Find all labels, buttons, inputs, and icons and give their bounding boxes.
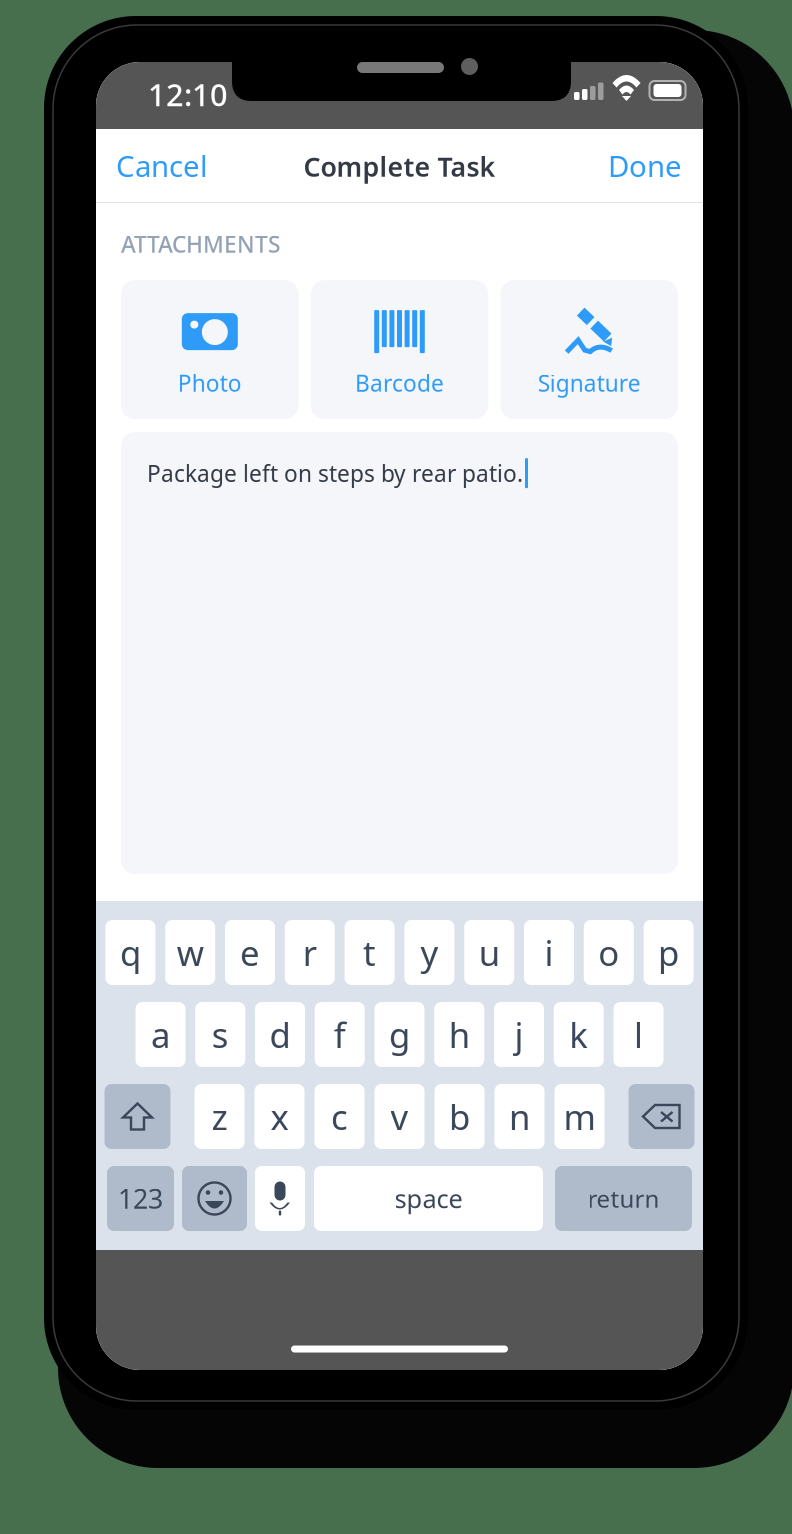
button[interactable]: i: [524, 920, 574, 985]
button[interactable]: v: [374, 1084, 424, 1149]
staticText: Complete Task: [303, 149, 495, 184]
staticText: Barcode: [355, 368, 444, 398]
staticText: l: [634, 1011, 643, 1057]
button[interactable]: p: [644, 920, 694, 985]
button[interactable]: q: [105, 920, 155, 985]
button[interactable]: Barcode: [311, 280, 488, 419]
staticText: 123: [118, 1181, 163, 1216]
button[interactable]: g: [374, 1002, 424, 1067]
button[interactable]: b: [434, 1084, 484, 1149]
staticText: Done: [608, 146, 682, 185]
button[interactable]: return: [555, 1166, 692, 1231]
button[interactable]: Emoji: [182, 1166, 247, 1231]
staticText: h: [449, 1011, 470, 1057]
staticText: j: [514, 1011, 523, 1057]
button[interactable]: t: [345, 920, 395, 985]
staticText: Signature: [538, 368, 641, 398]
button[interactable]: d: [255, 1002, 305, 1067]
button[interactable]: 123: [107, 1166, 174, 1231]
staticText: o: [598, 929, 619, 975]
staticText: t: [363, 929, 376, 975]
staticText: i: [544, 929, 553, 975]
button[interactable]: r: [285, 920, 335, 985]
staticText: a: [151, 1011, 170, 1057]
staticText: f: [334, 1011, 346, 1057]
staticText: q: [120, 929, 141, 975]
staticText: n: [509, 1093, 530, 1139]
staticText: Photo: [178, 368, 242, 398]
button[interactable]: z: [194, 1084, 244, 1149]
staticText: d: [269, 1011, 290, 1057]
button[interactable]: Delete: [628, 1084, 694, 1149]
button[interactable]: a: [135, 1002, 185, 1067]
staticText: ATTACHMENTS: [121, 229, 280, 259]
button[interactable]: space: [314, 1166, 543, 1231]
staticText: u: [479, 929, 500, 975]
staticText: w: [177, 929, 204, 975]
button[interactable]: n: [494, 1084, 544, 1149]
staticText: space: [394, 1182, 462, 1215]
staticText: z: [211, 1093, 227, 1139]
button[interactable]: Shift: [104, 1084, 170, 1149]
staticText: return: [587, 1183, 659, 1214]
staticText: 12:10: [148, 74, 228, 115]
button[interactable]: j: [494, 1002, 544, 1067]
button[interactable]: u: [464, 920, 514, 985]
button[interactable]: Done: [553, 129, 703, 202]
button[interactable]: m: [554, 1084, 604, 1149]
staticText: g: [389, 1011, 410, 1057]
button[interactable]: s: [195, 1002, 245, 1067]
button[interactable]: Dictate: [255, 1166, 305, 1231]
staticText: k: [569, 1011, 588, 1057]
button[interactable]: Signature: [500, 280, 678, 419]
button[interactable]: o: [584, 920, 634, 985]
button[interactable]: e: [225, 920, 275, 985]
staticText: v: [390, 1093, 408, 1139]
staticText: s: [212, 1011, 229, 1057]
button[interactable]: w: [165, 920, 215, 985]
staticText: e: [240, 929, 260, 975]
button[interactable]: l: [613, 1002, 663, 1067]
staticText: p: [658, 929, 679, 975]
staticText: Cancel: [116, 146, 208, 185]
button[interactable]: Cancel: [96, 129, 246, 202]
button[interactable]: c: [314, 1084, 364, 1149]
staticText: Package left on steps by rear patio.: [147, 458, 523, 488]
staticText: r: [303, 929, 317, 975]
staticText: c: [331, 1093, 348, 1139]
staticText: b: [449, 1093, 470, 1139]
button[interactable]: h: [434, 1002, 484, 1067]
button[interactable]: x: [254, 1084, 304, 1149]
button[interactable]: y: [404, 920, 454, 985]
button[interactable]: k: [554, 1002, 604, 1067]
button[interactable]: Photo: [121, 280, 299, 419]
button[interactable]: f: [315, 1002, 365, 1067]
staticText: m: [563, 1093, 595, 1139]
staticText: x: [270, 1093, 288, 1139]
staticText: y: [420, 929, 438, 975]
